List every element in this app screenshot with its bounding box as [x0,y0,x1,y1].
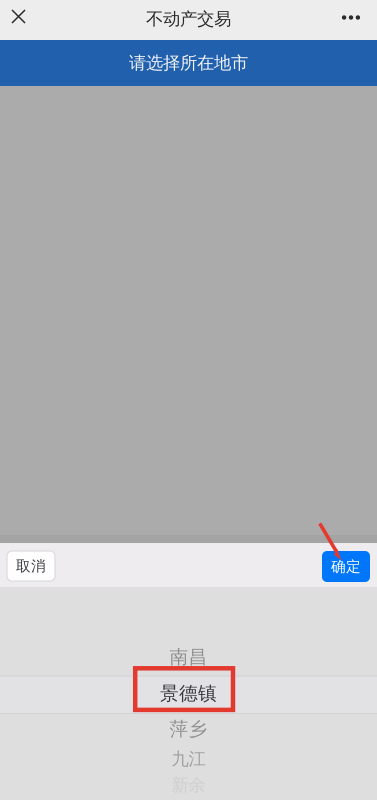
button[interactable]: Close [0,0,38,40]
staticText: 萍乡 [169,717,207,740]
staticText: 南昌 [169,645,207,668]
staticText: 景德镇 [160,682,217,705]
staticText: 取消 [16,557,46,575]
button[interactable]: 九江 [0,747,377,771]
button[interactable]: 取消 [7,551,55,581]
button[interactable]: 景德镇 [0,681,377,705]
staticText: 确定 [331,557,361,575]
staticText: 九江 [171,748,205,770]
staticText: 不动产交易 [146,8,231,30]
button[interactable]: More options [328,0,372,40]
button[interactable]: 萍乡 [0,717,377,741]
staticText: 请选择所在地市 [129,52,248,74]
staticText: 新余 [171,774,205,796]
button[interactable]: 确定 [322,551,370,582]
button[interactable]: 南昌 [0,645,377,669]
